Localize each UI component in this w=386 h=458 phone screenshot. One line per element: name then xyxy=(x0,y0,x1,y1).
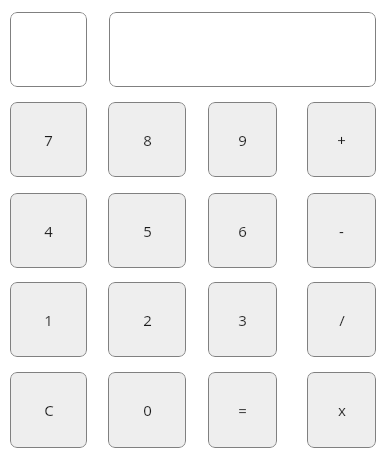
staticText: - xyxy=(339,221,344,241)
staticText: 7 xyxy=(44,130,53,150)
staticText: 5 xyxy=(143,221,152,241)
button[interactable]: 4 xyxy=(10,193,87,268)
staticText: x xyxy=(338,400,346,420)
button[interactable]: 6 xyxy=(208,193,277,268)
staticText: 2 xyxy=(143,310,152,330)
button[interactable]: 9 xyxy=(208,102,277,177)
staticText: 3 xyxy=(238,310,247,330)
button[interactable]: 3 xyxy=(208,282,277,357)
button[interactable]: = xyxy=(208,372,277,448)
button[interactable]: 2 xyxy=(108,282,186,357)
staticText: 0 xyxy=(143,400,152,420)
button[interactable]: + xyxy=(307,102,376,177)
staticText: 9 xyxy=(238,130,247,150)
button[interactable]: 8 xyxy=(108,102,186,177)
button[interactable]: C xyxy=(10,372,87,448)
staticText: 4 xyxy=(44,221,53,241)
button[interactable]: 0 xyxy=(108,372,186,448)
button[interactable]: - xyxy=(307,193,376,268)
button[interactable]: 7 xyxy=(10,102,87,177)
staticText: 6 xyxy=(238,221,247,241)
button[interactable]: Memory xyxy=(10,12,87,87)
staticText: 8 xyxy=(143,130,152,150)
staticText: C xyxy=(44,400,54,420)
staticText: = xyxy=(238,400,247,420)
button[interactable]: 1 xyxy=(10,282,87,357)
staticText: 1 xyxy=(44,310,53,330)
button[interactable]: 5 xyxy=(108,193,186,268)
staticText: / xyxy=(339,310,345,330)
staticText: + xyxy=(337,130,346,150)
button[interactable]: x xyxy=(307,372,376,448)
button[interactable]: Display xyxy=(109,12,376,87)
button[interactable]: / xyxy=(307,282,376,357)
